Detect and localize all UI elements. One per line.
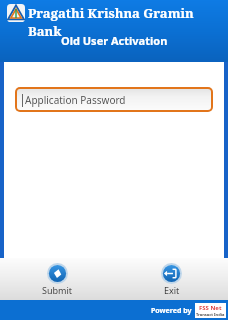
staticText: Old User Activation bbox=[61, 33, 168, 48]
other: Bank logo bbox=[6, 3, 26, 23]
staticText: Exit bbox=[164, 284, 180, 296]
staticText: Pragathi Krishna Gramin Bank bbox=[28, 4, 228, 40]
staticText: FSS Net bbox=[199, 304, 222, 312]
staticText: Powered by bbox=[151, 306, 192, 316]
staticText: Application Password bbox=[25, 93, 126, 107]
staticText: Submit bbox=[42, 284, 73, 296]
button[interactable]: Application Password bbox=[17, 89, 211, 110]
staticText: Transact India bbox=[196, 312, 225, 317]
button[interactable]: Submit bbox=[28, 261, 87, 298]
button[interactable]: Exit bbox=[147, 261, 196, 298]
